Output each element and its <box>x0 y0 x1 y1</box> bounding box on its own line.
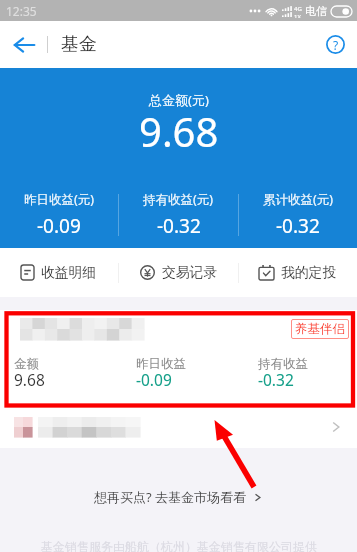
staticText: 电信 <box>305 4 327 18</box>
staticText: 养基伴侣 <box>295 321 345 337</box>
staticText: 金额 <box>14 356 39 372</box>
staticText: 想再买点? 去基金市场看看 <box>94 488 247 506</box>
staticText: 持有收益(元) <box>143 191 214 208</box>
staticText: 1X <box>294 13 301 18</box>
button[interactable]: 养基伴侣 <box>0 310 357 405</box>
staticText: 12:35 <box>6 3 37 19</box>
staticText: 基金销售服务由船航（杭州）基金销售有限公司提供 <box>41 539 317 552</box>
staticText: 累计收益(元) <box>263 191 334 208</box>
staticText: 我的定投 <box>281 264 337 281</box>
staticText: 交易记录 <box>162 264 218 281</box>
staticText: ? <box>333 37 339 53</box>
staticText: -0.09 <box>136 369 172 390</box>
button[interactable]: 交易记录 <box>119 248 238 297</box>
staticText: 9.68 <box>14 369 45 390</box>
staticText: 昨日收益(元) <box>24 191 95 208</box>
staticText: 收益明细 <box>41 264 97 281</box>
staticText: 总金额(元) <box>149 91 209 109</box>
button[interactable]: Help <box>313 21 357 68</box>
button[interactable]: 我的定投 <box>239 248 357 297</box>
button[interactable]: Back <box>0 21 47 68</box>
staticText: -0.09 <box>37 213 81 239</box>
staticText: 昨日收益 <box>136 356 186 372</box>
staticText: 4G <box>294 5 302 13</box>
staticText: 基金 <box>61 33 97 56</box>
staticText: -0.32 <box>157 213 201 239</box>
staticText: -0.32 <box>258 369 294 390</box>
staticText: 持有收益 <box>258 356 308 372</box>
button[interactable]: 想再买点? 去基金市场看看 <box>0 486 357 508</box>
button[interactable] <box>0 405 357 448</box>
button[interactable]: 收益明细 <box>0 248 118 297</box>
staticText: -0.32 <box>276 213 320 239</box>
staticText: 9.68 <box>139 104 219 158</box>
